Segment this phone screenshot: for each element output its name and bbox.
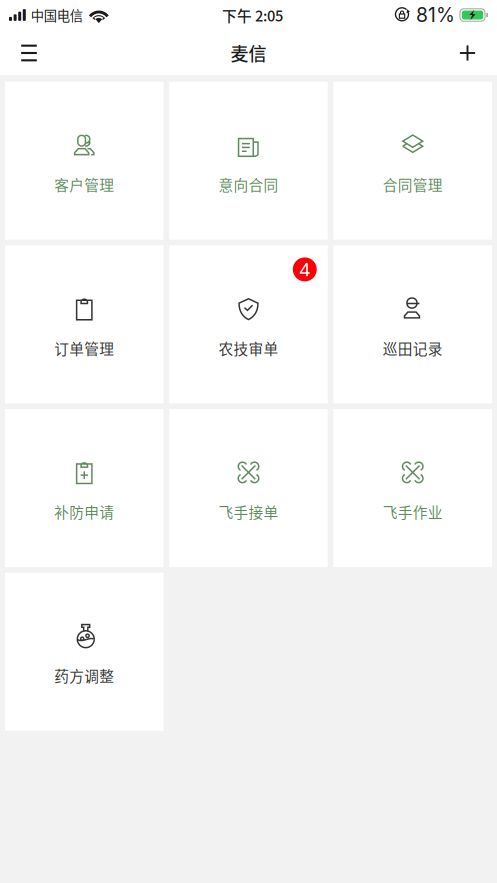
button[interactable]: Add xyxy=(443,30,492,76)
button[interactable]: Menu xyxy=(5,30,53,76)
staticText: 客户管理 xyxy=(54,174,114,195)
button[interactable]: 意向合同 xyxy=(169,82,328,240)
button[interactable]: 订单管理 xyxy=(5,245,163,403)
staticText: 4 xyxy=(299,258,311,281)
staticText: 药方调整 xyxy=(54,665,114,686)
button[interactable]: 巡田记录 xyxy=(333,245,492,403)
button[interactable]: 客户管理 xyxy=(5,82,163,240)
staticText: 巡田记录 xyxy=(383,337,443,359)
staticText: 农技审单 xyxy=(218,337,278,359)
button[interactable]: 飞手作业 xyxy=(333,409,492,567)
button[interactable]: 补防申请 xyxy=(5,409,163,567)
staticText: 补防申请 xyxy=(54,501,114,522)
staticText: 下午 2:05 xyxy=(222,4,283,26)
button[interactable]: 药方调整 xyxy=(5,573,163,731)
button[interactable]: 合同管理 xyxy=(333,82,492,240)
staticText: 飞手作业 xyxy=(383,501,443,522)
button[interactable]: 飞手接单 xyxy=(169,409,328,567)
staticText: 订单管理 xyxy=(54,337,114,359)
staticText: 意向合同 xyxy=(218,174,278,195)
staticText: 飞手接单 xyxy=(218,501,278,522)
staticText: 麦信 xyxy=(230,40,266,66)
staticText: 81% xyxy=(416,3,455,27)
staticText: 中国电信 xyxy=(31,5,83,25)
button[interactable]: 农技审单 xyxy=(169,245,328,403)
staticText: 合同管理 xyxy=(383,174,443,195)
